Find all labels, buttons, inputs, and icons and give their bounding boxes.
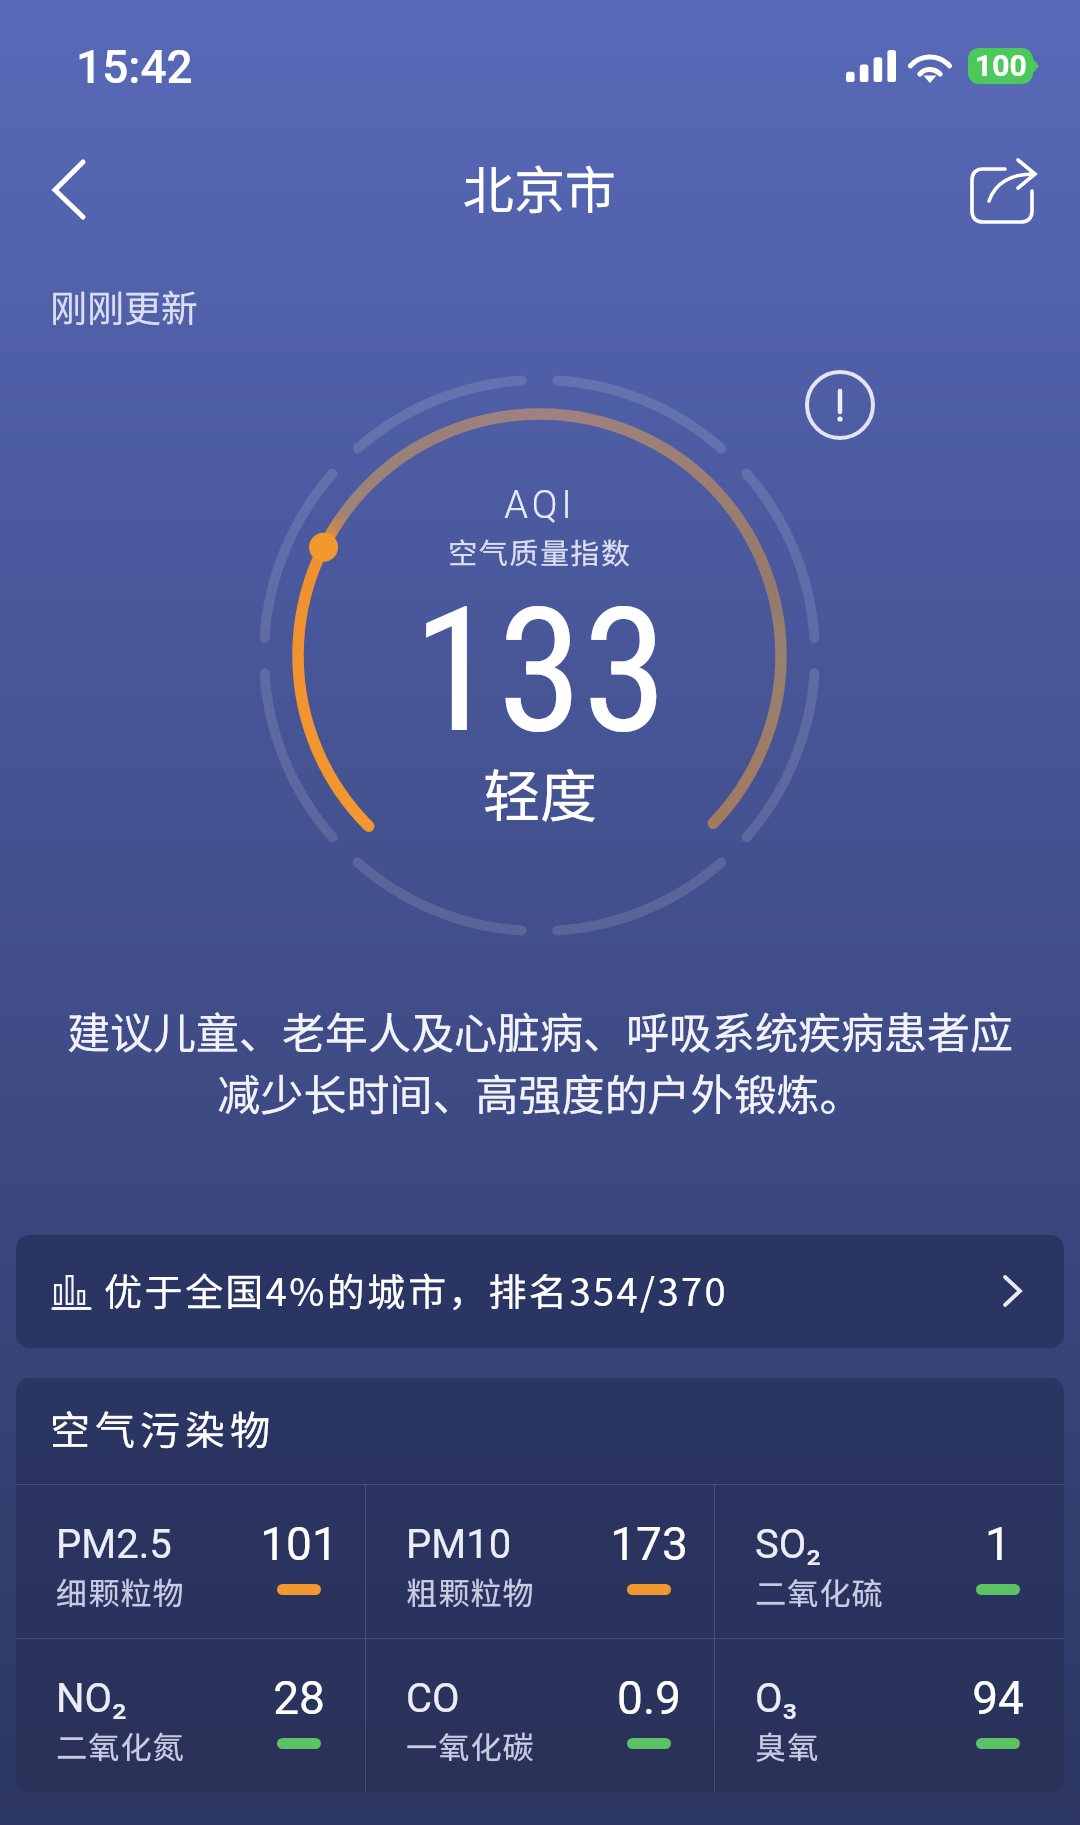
staticText: 1 <box>898 1517 1064 1571</box>
staticText: 轻度 <box>0 751 1080 834</box>
staticText: PM2.5 <box>56 1521 172 1568</box>
staticText: 101 <box>199 1517 399 1571</box>
staticText: 空气质量指数 <box>0 530 1080 572</box>
staticText: 二氧化硫 <box>755 1569 884 1614</box>
staticText: 94 <box>898 1671 1064 1725</box>
staticText: 28 <box>199 1671 399 1725</box>
staticText: 15:42 <box>76 40 193 94</box>
button[interactable]: Info <box>805 370 875 440</box>
staticText: CO <box>406 1675 460 1722</box>
button[interactable]: Back <box>26 140 112 240</box>
button[interactable]: 优于全国4%的城市，排名354/370 <box>16 1235 1064 1348</box>
staticText: AQI <box>0 483 1080 528</box>
staticText: 一氧化碳 <box>406 1723 535 1768</box>
staticText: 北京市 <box>463 150 617 224</box>
staticText: 粗颗粒物 <box>406 1569 535 1614</box>
staticText: 173 <box>549 1517 749 1571</box>
staticText: 空气污染物 <box>50 1399 275 1457</box>
staticText: 二氧化氮 <box>56 1723 185 1768</box>
staticText: 细颗粒物 <box>56 1569 185 1614</box>
staticText: 优于全国4%的城市，排名354/370 <box>104 1262 729 1317</box>
staticText: O₃ <box>755 1675 798 1722</box>
staticText: NO₂ <box>56 1675 127 1722</box>
staticText: 133 <box>0 570 1080 772</box>
staticText: 刚刚更新 <box>50 279 198 333</box>
staticText: 100 <box>975 48 1027 83</box>
button[interactable]: Share <box>955 140 1051 240</box>
staticText: 建议儿童、老年人及心脏病、呼吸系统疾病患者应 减少长时间、高强度的户外锻炼。 <box>0 999 1080 1124</box>
staticText: 0.9 <box>549 1671 749 1725</box>
staticText: 臭氧 <box>755 1723 820 1768</box>
staticText: PM10 <box>406 1521 512 1568</box>
staticText: SO₂ <box>755 1521 821 1568</box>
